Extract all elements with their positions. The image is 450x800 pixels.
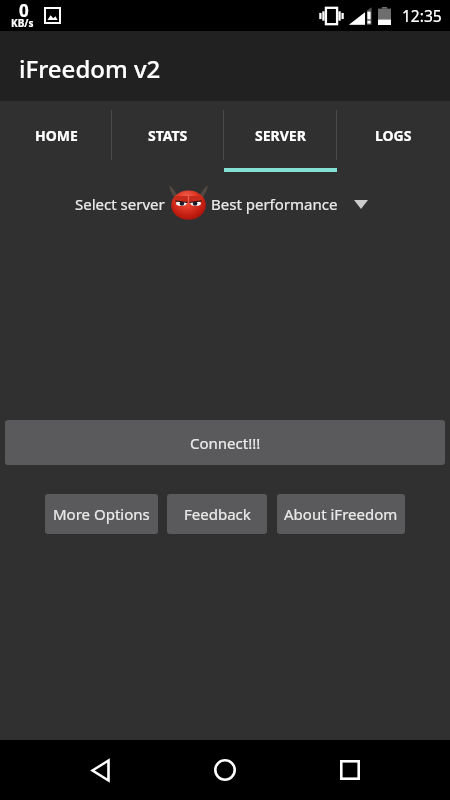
staticText: More Options bbox=[53, 504, 150, 524]
staticText: Connect!!! bbox=[190, 433, 261, 453]
staticText: About iFreedom bbox=[284, 504, 398, 524]
button[interactable]: More Options bbox=[45, 494, 158, 534]
staticText: KB/s bbox=[11, 16, 34, 30]
button[interactable]: HOME bbox=[0, 101, 112, 172]
button[interactable]: Feedback bbox=[167, 494, 267, 534]
button[interactable]: STATS bbox=[112, 101, 224, 172]
staticText: SERVER bbox=[255, 126, 306, 145]
button[interactable]: About iFreedom bbox=[277, 494, 405, 534]
staticText: iFreedom v2 bbox=[19, 52, 161, 85]
staticText: LOGS bbox=[375, 126, 412, 145]
staticText: Best performance bbox=[211, 194, 338, 214]
button[interactable]: SERVER bbox=[224, 101, 337, 172]
staticText: HOME bbox=[35, 126, 78, 145]
button[interactable]: Home bbox=[195, 740, 255, 800]
button[interactable]: Back bbox=[70, 740, 130, 800]
button[interactable]: LOGS bbox=[337, 101, 450, 172]
button[interactable]: Recents bbox=[320, 740, 380, 800]
staticText: 12:35 bbox=[402, 5, 442, 26]
button[interactable]: Best performance bbox=[211, 194, 368, 214]
staticText: STATS bbox=[148, 126, 188, 145]
staticText: Feedback bbox=[184, 504, 251, 524]
staticText: 0 bbox=[19, 0, 29, 22]
button[interactable]: Connect!!! bbox=[5, 420, 445, 465]
staticText: Select server bbox=[75, 194, 165, 214]
